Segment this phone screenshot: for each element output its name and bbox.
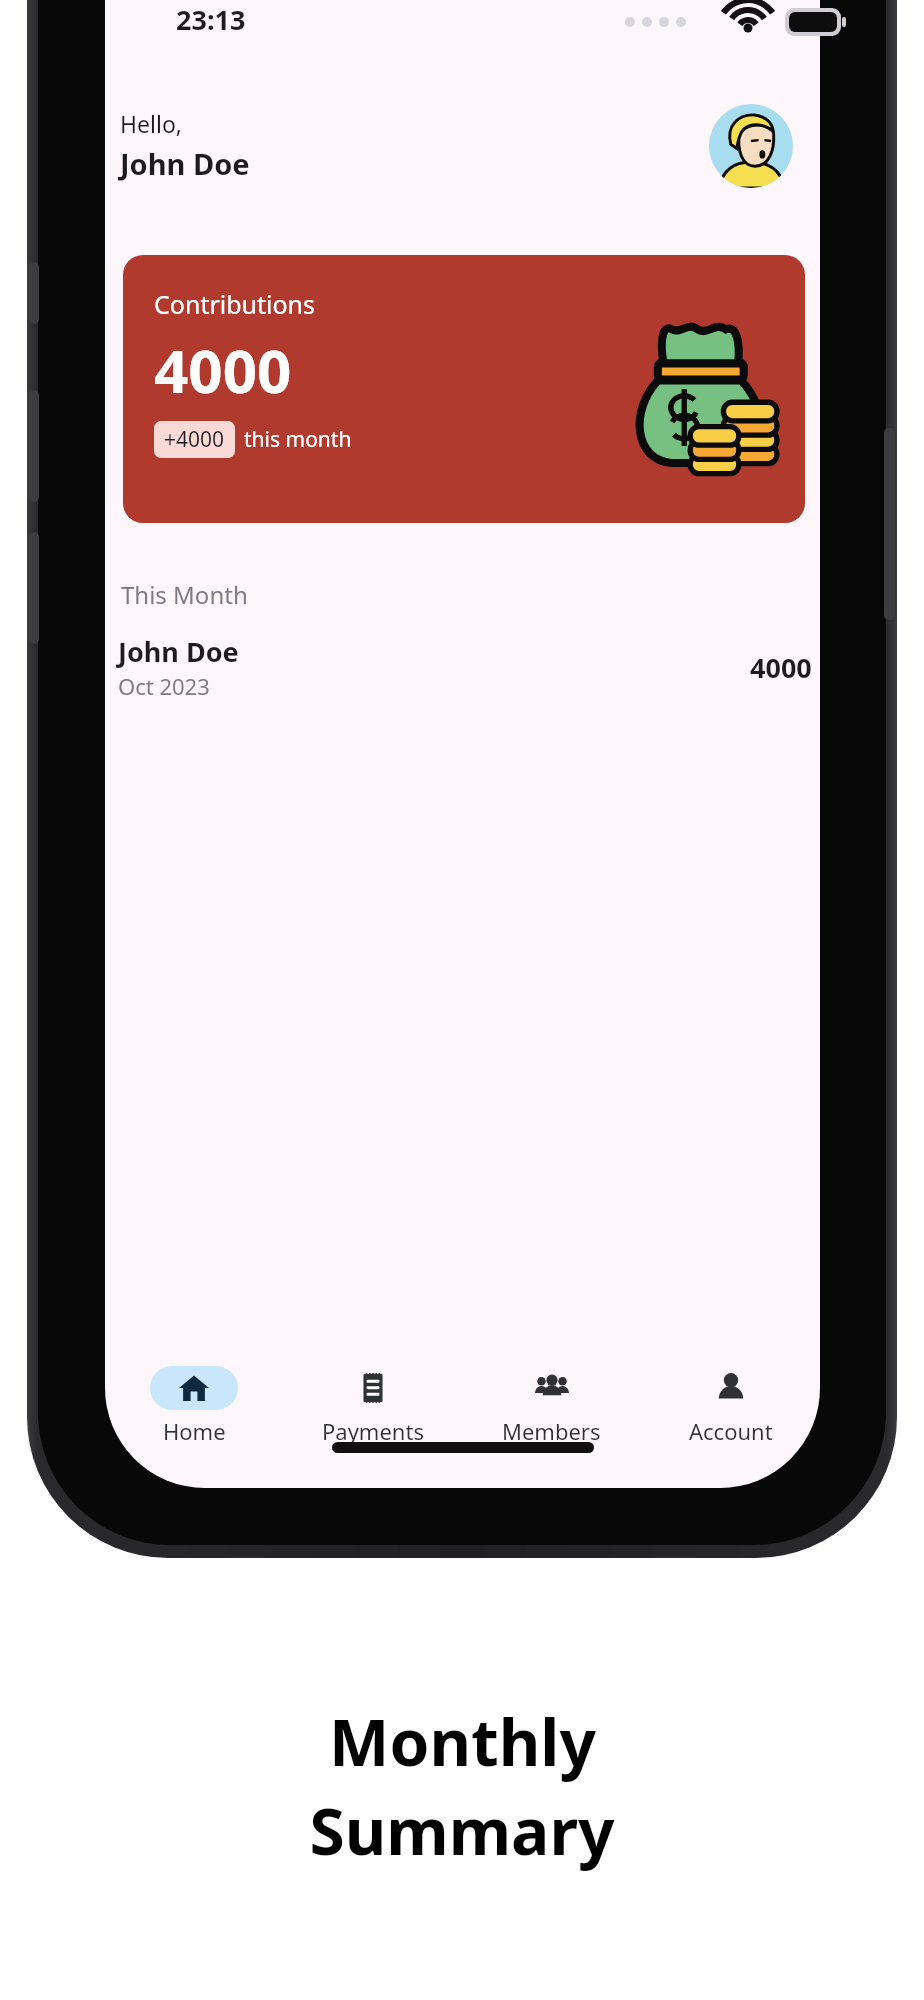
staticText: this month	[244, 425, 352, 454]
button[interactable]: Account	[641, 1366, 820, 1478]
staticText: +4000	[164, 425, 225, 454]
staticText: John Doe	[120, 144, 250, 183]
staticText: Oct 2023	[118, 671, 210, 701]
button[interactable]: Home	[105, 1366, 283, 1478]
staticText: 4000	[750, 649, 812, 686]
staticText: John Doe	[118, 633, 239, 670]
staticText: 23:13	[176, 1, 246, 38]
staticText: Hello,	[120, 108, 182, 139]
staticText: 4000	[154, 329, 292, 411]
staticText: Monthly	[329, 1698, 596, 1785]
staticText: Members	[502, 1416, 601, 1446]
button[interactable]: Payments	[283, 1366, 462, 1478]
button[interactable]: Profile	[709, 104, 793, 188]
staticText: Payments	[322, 1416, 424, 1446]
staticText: Contributions	[154, 287, 316, 321]
staticText: Account	[689, 1416, 773, 1446]
button[interactable]: Contributions	[123, 255, 805, 523]
button[interactable]: John Doe	[118, 628, 812, 706]
button[interactable]: Members	[462, 1366, 641, 1478]
staticText: This Month	[121, 578, 248, 611]
staticText: Home	[163, 1416, 226, 1446]
staticText: Summary	[309, 1787, 615, 1874]
